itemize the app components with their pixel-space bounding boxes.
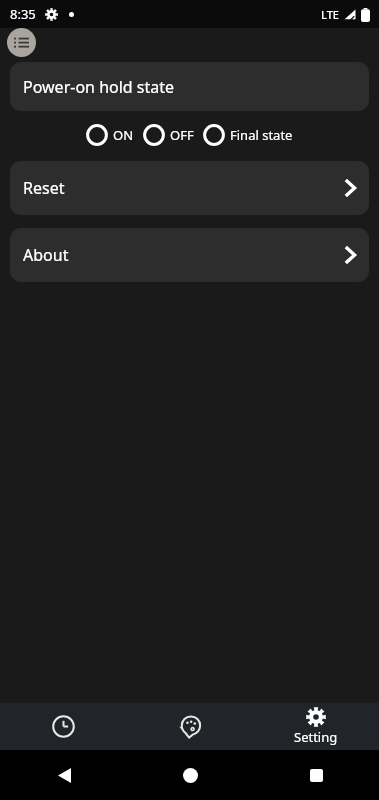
staticText: OFF xyxy=(170,126,194,144)
staticText: Power-on hold state xyxy=(23,76,175,98)
button[interactable]: Setting xyxy=(253,703,379,750)
button[interactable]: Reset xyxy=(10,161,369,215)
button[interactable]: Clock xyxy=(0,703,127,750)
button[interactable]: ON xyxy=(86,122,134,148)
button[interactable]: Recent apps xyxy=(301,760,331,790)
staticText: Reset xyxy=(23,177,65,199)
staticText: About xyxy=(23,244,69,266)
staticText: Final state xyxy=(230,126,293,144)
button[interactable]: OFF xyxy=(143,122,194,148)
staticText: ON xyxy=(113,126,134,144)
button[interactable]: Power-on hold state xyxy=(10,62,369,111)
button[interactable]: Palette xyxy=(127,703,253,750)
staticText: LTE xyxy=(321,7,339,22)
button[interactable]: Final state xyxy=(203,122,293,148)
button[interactable]: Menu xyxy=(7,28,36,57)
button[interactable]: Back xyxy=(49,760,79,790)
button[interactable]: About xyxy=(10,228,369,282)
staticText: Setting xyxy=(294,728,338,746)
button[interactable]: Home xyxy=(175,760,205,790)
staticText: 8:35 xyxy=(10,5,36,23)
